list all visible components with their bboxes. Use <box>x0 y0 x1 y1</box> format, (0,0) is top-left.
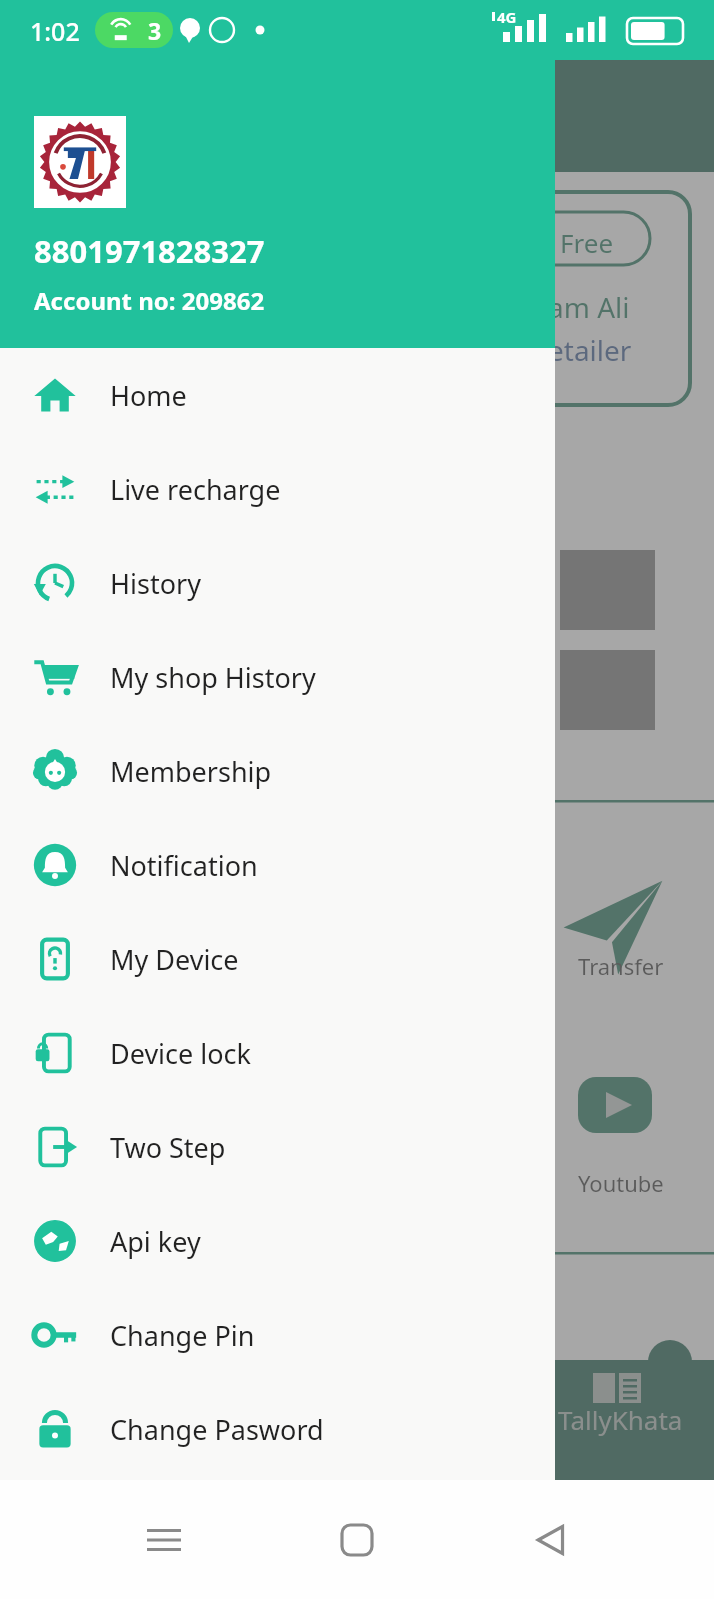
button[interactable]: Device lock <box>0 1006 555 1100</box>
staticText: Home <box>110 377 187 414</box>
staticText: Notification <box>110 847 258 884</box>
staticText: 3 <box>148 15 162 46</box>
staticText: 8801971828327 <box>34 230 265 272</box>
button[interactable]: Home <box>0 348 555 442</box>
staticText: Membership <box>110 753 272 790</box>
button[interactable]: Back <box>521 1510 581 1570</box>
staticText: TallyKhata <box>558 1402 683 1437</box>
button[interactable]: 8801971828327 <box>0 0 555 348</box>
staticText: Free <box>560 225 614 260</box>
staticText: Change Pasword <box>110 1411 324 1448</box>
staticText: etailer <box>548 331 632 369</box>
staticText: History <box>110 565 201 602</box>
button[interactable]: History <box>0 536 555 630</box>
staticText: 1:02 <box>30 14 80 48</box>
button[interactable]: Change Pin <box>0 1288 555 1382</box>
staticText: Api key <box>110 1223 201 1260</box>
button[interactable]: My shop History <box>0 630 555 724</box>
staticText: Change Pin <box>110 1317 255 1354</box>
button[interactable]: Live recharge <box>0 442 555 536</box>
button[interactable]: Api key <box>0 1194 555 1288</box>
staticText: Transfer <box>578 951 664 981</box>
staticText: am Ali <box>548 288 630 326</box>
button[interactable]: Membership <box>0 724 555 818</box>
staticText: My Device <box>110 941 239 978</box>
button[interactable]: Home <box>327 1510 387 1570</box>
staticText: Two Step <box>110 1129 226 1166</box>
staticText: Youtube <box>578 1168 664 1198</box>
staticText: My shop History <box>110 659 316 696</box>
staticText: Account no: 209862 <box>34 284 265 317</box>
button[interactable]: My Device <box>0 912 555 1006</box>
button[interactable]: Change Pasword <box>0 1382 555 1476</box>
button[interactable]: Notification <box>0 818 555 912</box>
staticText: 4G <box>497 7 517 27</box>
staticText: Live recharge <box>110 471 281 508</box>
button[interactable]: Recent apps <box>134 1510 194 1570</box>
staticText: Device lock <box>110 1035 251 1072</box>
button[interactable]: Two Step <box>0 1100 555 1194</box>
